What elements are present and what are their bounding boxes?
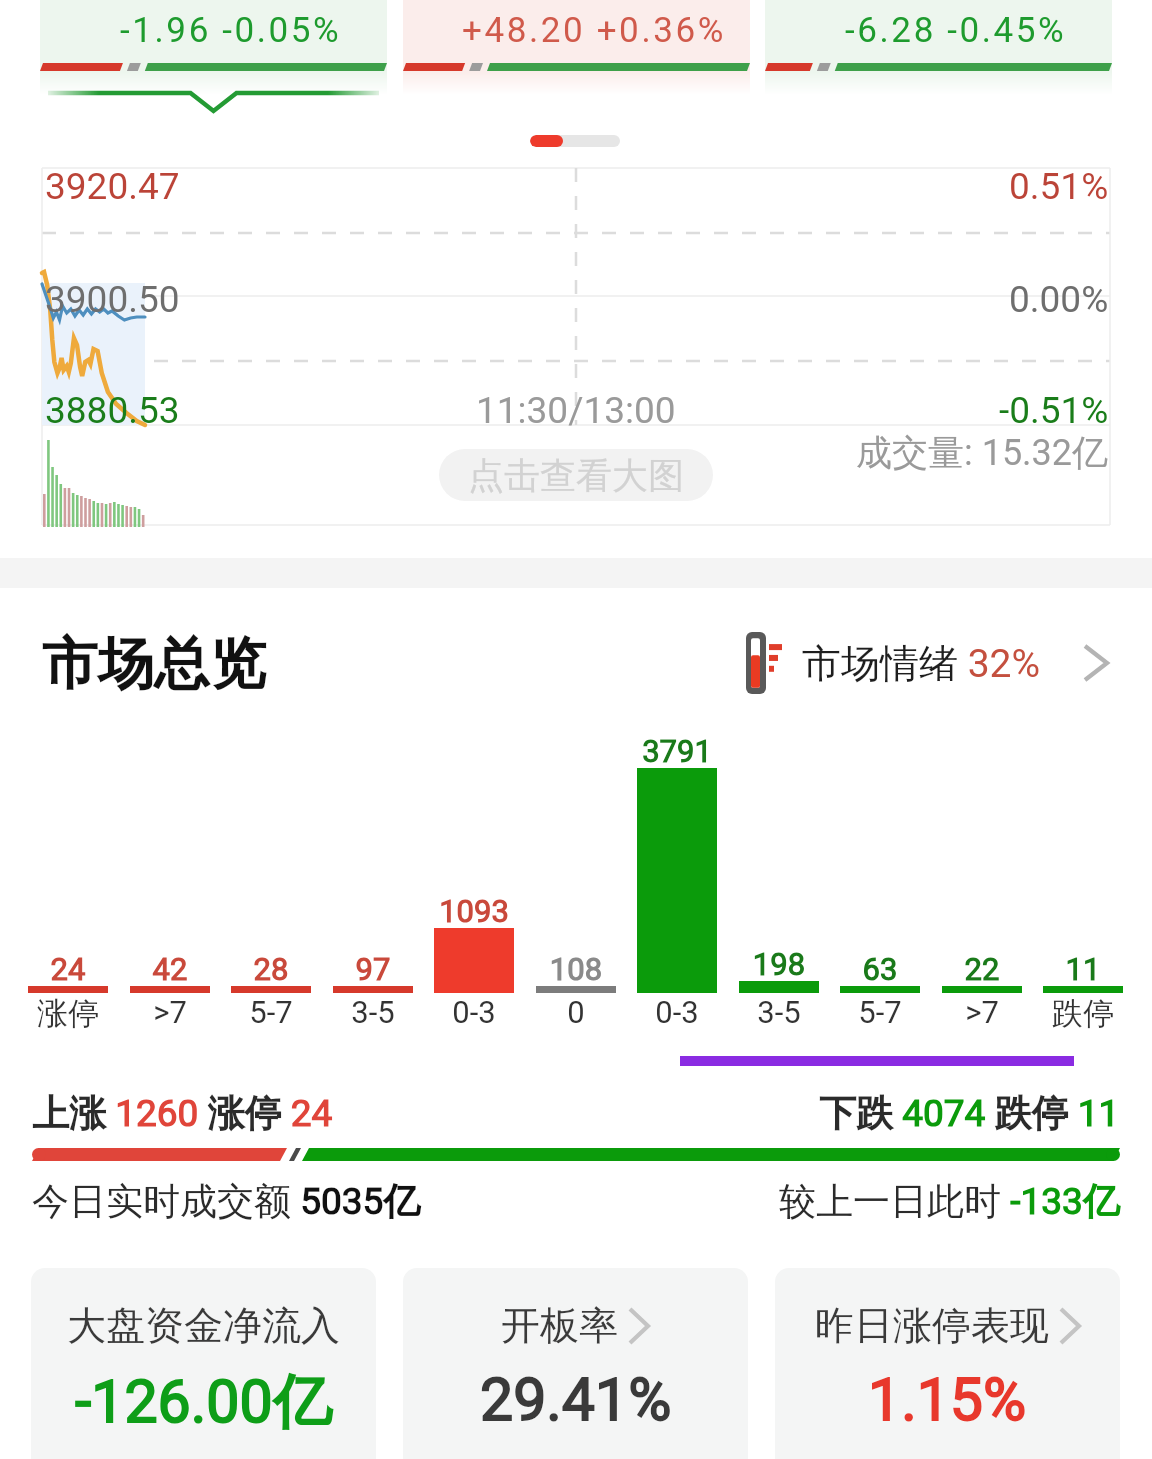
staticText: 0-3 bbox=[414, 994, 534, 1030]
staticText: 0-3 bbox=[617, 994, 737, 1030]
staticText: -0.51% bbox=[999, 389, 1109, 432]
button[interactable] bbox=[530, 135, 620, 147]
staticText: 22 bbox=[922, 951, 1042, 987]
staticText: 市场总览 bbox=[42, 629, 266, 700]
button[interactable] bbox=[221, 720, 321, 1040]
staticText: 昨日涨停表现 bbox=[815, 1301, 1049, 1350]
button[interactable]: 点击查看大图 bbox=[439, 449, 713, 501]
staticText: 97 bbox=[313, 951, 433, 987]
staticText: -1.96 -0.05% bbox=[120, 10, 342, 51]
staticText: 1093 bbox=[414, 893, 534, 929]
button[interactable]: -6.28 -0.45% bbox=[765, 0, 1112, 60]
button[interactable]: +48.20 +0.36% bbox=[403, 0, 750, 60]
button[interactable] bbox=[729, 720, 829, 1040]
staticText: 63 bbox=[820, 951, 940, 987]
other: Market sentiment bbox=[746, 632, 782, 694]
staticText: 跌停 bbox=[1023, 994, 1143, 1033]
button[interactable] bbox=[830, 720, 930, 1040]
button[interactable] bbox=[932, 720, 1032, 1040]
staticText: 1.15% bbox=[868, 1365, 1027, 1434]
staticText: 108 bbox=[516, 951, 636, 987]
button[interactable]: 市场总览 bbox=[42, 629, 266, 700]
staticText: 198 bbox=[719, 946, 839, 982]
staticText: 11:30/13:00 bbox=[476, 389, 676, 432]
staticText: -126.00亿 bbox=[75, 1365, 332, 1439]
staticText: 42 bbox=[110, 951, 230, 987]
staticText: 3-5 bbox=[719, 994, 839, 1030]
staticText: 较上一日此时 -133亿 bbox=[779, 1178, 1120, 1225]
button[interactable]: 大盘资金净流入 bbox=[31, 1268, 376, 1459]
staticText: +48.20 +0.36% bbox=[462, 10, 726, 51]
staticText: 点击查看大图 bbox=[468, 453, 684, 498]
staticText: 3791 bbox=[617, 733, 737, 769]
staticText: 5-7 bbox=[820, 994, 940, 1030]
staticText: -6.28 -0.45% bbox=[845, 10, 1067, 51]
staticText: 0.00% bbox=[1009, 278, 1109, 321]
button[interactable]: 昨日涨停表现 bbox=[775, 1268, 1120, 1459]
staticText: 5-7 bbox=[211, 994, 331, 1030]
button[interactable] bbox=[120, 720, 220, 1040]
staticText: 3880.53 bbox=[45, 389, 180, 432]
staticText: 成交量: 15.32亿 bbox=[856, 430, 1109, 475]
staticText: 3-5 bbox=[313, 994, 433, 1030]
staticText: 28 bbox=[211, 951, 331, 987]
button[interactable] bbox=[323, 720, 423, 1040]
staticText: 0 bbox=[516, 994, 636, 1030]
button[interactable]: -1.96 -0.05% bbox=[40, 0, 387, 60]
staticText: 今日实时成交额 5035亿 bbox=[32, 1178, 421, 1225]
button[interactable] bbox=[424, 720, 524, 1040]
staticText: 开板率 bbox=[501, 1301, 618, 1350]
staticText: 0.51% bbox=[1009, 165, 1109, 208]
staticText: 24 bbox=[8, 951, 128, 987]
staticText: 3900.50 bbox=[45, 278, 180, 321]
staticText: 市场情绪 32% bbox=[802, 639, 1041, 688]
staticText: 涨停 bbox=[8, 994, 128, 1033]
staticText: >7 bbox=[922, 994, 1042, 1030]
button[interactable] bbox=[627, 720, 727, 1040]
staticText: >7 bbox=[110, 994, 230, 1030]
staticText: 大盘资金净流入 bbox=[67, 1301, 340, 1350]
button[interactable]: 开板率 bbox=[403, 1268, 748, 1459]
button[interactable] bbox=[18, 720, 118, 1040]
staticText: 29.41% bbox=[480, 1365, 672, 1434]
staticText: 下跌 4074 跌停 11 bbox=[819, 1090, 1120, 1137]
staticText: 上涨 1260 涨停 24 bbox=[32, 1090, 333, 1137]
staticText: 11 bbox=[1023, 951, 1143, 987]
staticText: 3920.47 bbox=[45, 165, 180, 208]
button[interactable] bbox=[1033, 720, 1133, 1040]
button[interactable]: Market sentiment bbox=[746, 632, 1109, 694]
button[interactable] bbox=[526, 720, 626, 1040]
